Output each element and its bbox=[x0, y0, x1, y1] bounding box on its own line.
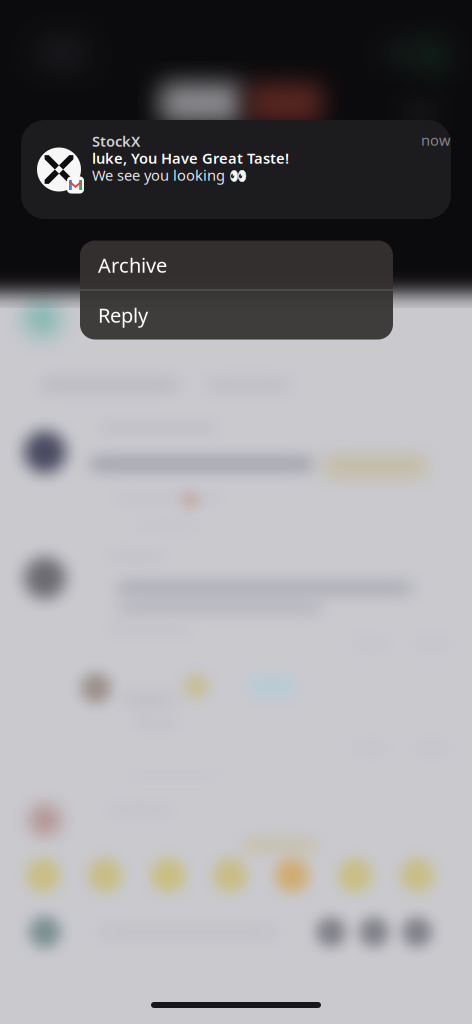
staticText: StockX bbox=[92, 131, 140, 151]
staticText: We see you looking 👀 bbox=[92, 165, 247, 185]
staticText: now bbox=[421, 130, 451, 150]
button[interactable]: Reply bbox=[80, 290, 393, 339]
button[interactable]: Archive bbox=[80, 240, 393, 289]
staticText: Archive bbox=[98, 252, 167, 278]
staticText: luke, You Have Great Taste! bbox=[92, 148, 289, 168]
staticText: Reply bbox=[98, 302, 148, 328]
